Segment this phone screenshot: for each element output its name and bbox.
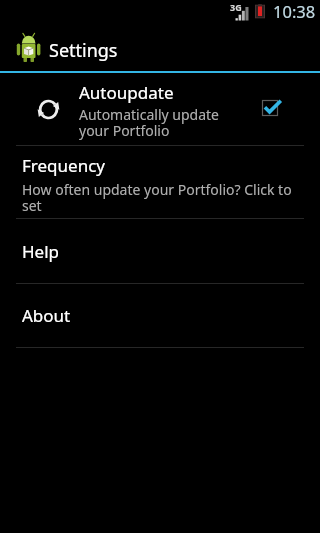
button[interactable]: Autoupdate: [0, 73, 320, 145]
staticText: About: [22, 304, 71, 327]
button[interactable]: Autoupdate enabled: [258, 93, 288, 123]
staticText: Automatically update your Portfolio: [79, 105, 219, 140]
staticText: 3G: [230, 1, 242, 13]
staticText: How often update your Portfolio? Click t…: [22, 180, 302, 215]
staticText: Settings: [49, 38, 118, 63]
staticText: Autoupdate: [79, 81, 174, 104]
staticText: 10:38: [273, 0, 316, 22]
staticText: Frequency: [22, 154, 105, 177]
button[interactable]: Help: [0, 219, 320, 283]
button[interactable]: Frequency: [0, 146, 320, 218]
button[interactable]: About: [0, 284, 320, 347]
staticText: Help: [22, 240, 60, 263]
